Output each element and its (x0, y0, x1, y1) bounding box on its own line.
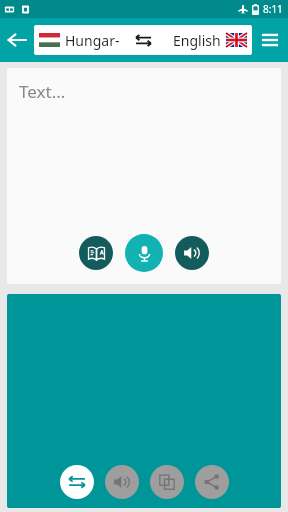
button[interactable]: Voice input (125, 234, 163, 272)
button[interactable]: Speak translation (105, 465, 139, 499)
button[interactable]: Swap translation (60, 465, 94, 499)
staticText: English (173, 31, 221, 50)
button[interactable]: Swap languages (126, 25, 160, 55)
staticText: 8:11 (263, 2, 283, 16)
button[interactable]: Menu (252, 22, 288, 58)
button[interactable]: Back (0, 23, 34, 57)
button[interactable]: Hungar- (34, 25, 126, 55)
button[interactable]: English (160, 25, 252, 55)
button[interactable]: Share translation (195, 465, 229, 499)
staticText: Hungar- (65, 31, 120, 50)
staticText: Text... (19, 80, 66, 103)
button[interactable]: Speak source text (175, 236, 209, 270)
button[interactable]: Dictionary (79, 236, 113, 270)
button[interactable]: Copy translation (150, 465, 184, 499)
